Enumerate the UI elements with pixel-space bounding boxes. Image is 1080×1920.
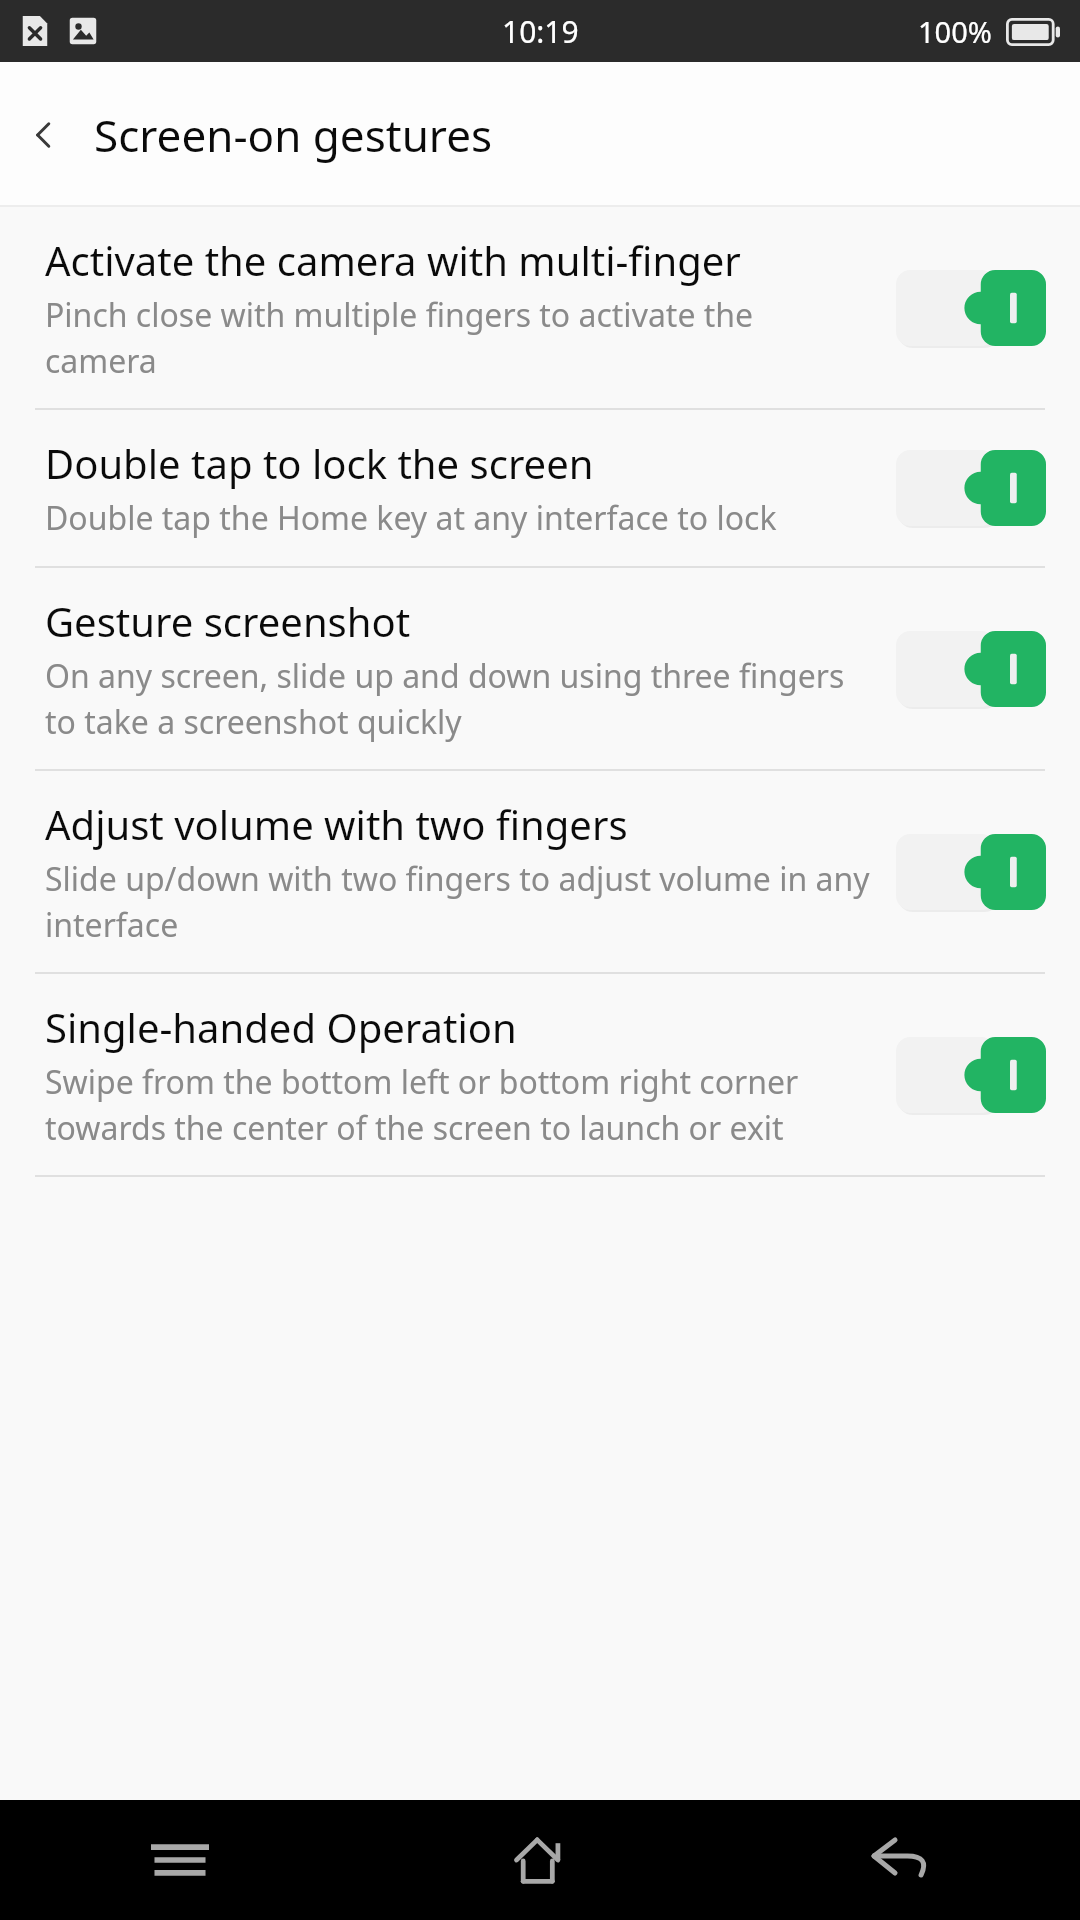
staticText: 10:19 [502, 11, 579, 52]
staticText: Gesture screenshot [45, 594, 411, 648]
button[interactable]: Home [360, 1800, 720, 1920]
staticText: Slide up/down with two fingers to adjust… [45, 857, 870, 946]
button[interactable]: Adjust volume with two fingers [0, 771, 1080, 974]
button[interactable]: Toggle [896, 834, 1046, 910]
staticText: On any screen, slide up and down using t… [45, 654, 870, 743]
staticText: Adjust volume with two fingers [45, 797, 628, 851]
staticText: 100% [918, 12, 992, 51]
staticText: Double tap to lock the screen [45, 436, 594, 490]
button[interactable]: Recent apps [0, 1800, 360, 1920]
staticText: Single-handed Operation [45, 1000, 517, 1054]
staticText: Screen-on gestures [94, 105, 493, 165]
button[interactable]: Gesture screenshot [0, 568, 1080, 771]
staticText: Double tap the Home key at any interface… [45, 496, 777, 540]
button[interactable]: Single-handed Operation [0, 974, 1080, 1177]
staticText: Activate the camera with multi-finger [45, 233, 741, 287]
button[interactable]: Toggle [896, 631, 1046, 707]
button[interactable]: Toggle [896, 270, 1046, 346]
button[interactable]: Toggle [896, 450, 1046, 526]
staticText: Pinch close with multiple fingers to act… [45, 293, 870, 382]
button[interactable]: Back [8, 99, 80, 171]
button[interactable]: Back [720, 1800, 1080, 1920]
button[interactable]: Toggle [896, 1037, 1046, 1113]
staticText: Swipe from the bottom left or bottom rig… [45, 1060, 870, 1149]
button[interactable]: Double tap to lock the screen [0, 410, 1080, 568]
button[interactable]: Activate the camera with multi-finger [0, 207, 1080, 410]
